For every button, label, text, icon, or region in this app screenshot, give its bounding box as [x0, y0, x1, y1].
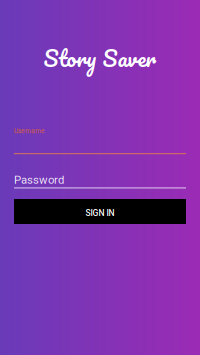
staticText: SIGN IN [85, 208, 114, 218]
staticText: Username [14, 127, 45, 135]
staticText: Story Saver [43, 39, 156, 77]
staticText: Password [14, 173, 64, 187]
button[interactable]: SIGN IN [14, 199, 186, 224]
